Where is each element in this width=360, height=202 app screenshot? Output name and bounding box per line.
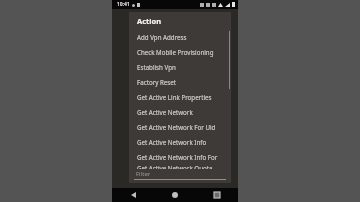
staticText: Get Active Network Info [137, 138, 207, 146]
button[interactable]: Back [112, 188, 154, 202]
staticText: Check Mobile Provisioning [137, 48, 214, 56]
button[interactable]: Get Active Network Info [129, 134, 231, 149]
staticText: Get Active Network Info For Uid [137, 153, 225, 161]
staticText: Action [137, 16, 162, 26]
staticText: Add Vpn Address [137, 33, 187, 41]
button[interactable]: Get Active Network [129, 104, 231, 119]
button[interactable]: Factory Reset [129, 74, 231, 89]
staticText: Get Active Network Quota Info [137, 164, 225, 169]
button[interactable]: Get Active Link Properties [129, 89, 231, 104]
staticText: Filter [136, 170, 151, 178]
button[interactable]: Establish Vpn [129, 59, 231, 74]
button[interactable]: Add Vpn Address [129, 29, 231, 44]
button[interactable]: Home [154, 188, 196, 202]
button[interactable]: Filter [129, 169, 231, 183]
button[interactable]: Get Active Network Info For Uid [129, 149, 231, 164]
staticText: Establish Vpn [137, 63, 176, 71]
button[interactable]: Recent apps [196, 188, 238, 202]
button[interactable]: Get Active Network Quota Info [129, 164, 231, 169]
staticText: Get Active Network [137, 108, 193, 116]
staticText: Get Active Link Properties [137, 93, 212, 101]
staticText: Factory Reset [137, 78, 176, 86]
staticText: 10:41 [117, 1, 130, 8]
staticText: Action Edit [132, 11, 161, 18]
button[interactable]: Check Mobile Provisioning [129, 44, 231, 59]
staticText: Get Active Network Info For Uid [130, 176, 205, 183]
button[interactable]: Get Active Network For Uid [129, 119, 231, 134]
staticText: Get Active Network For Uid [137, 123, 216, 131]
